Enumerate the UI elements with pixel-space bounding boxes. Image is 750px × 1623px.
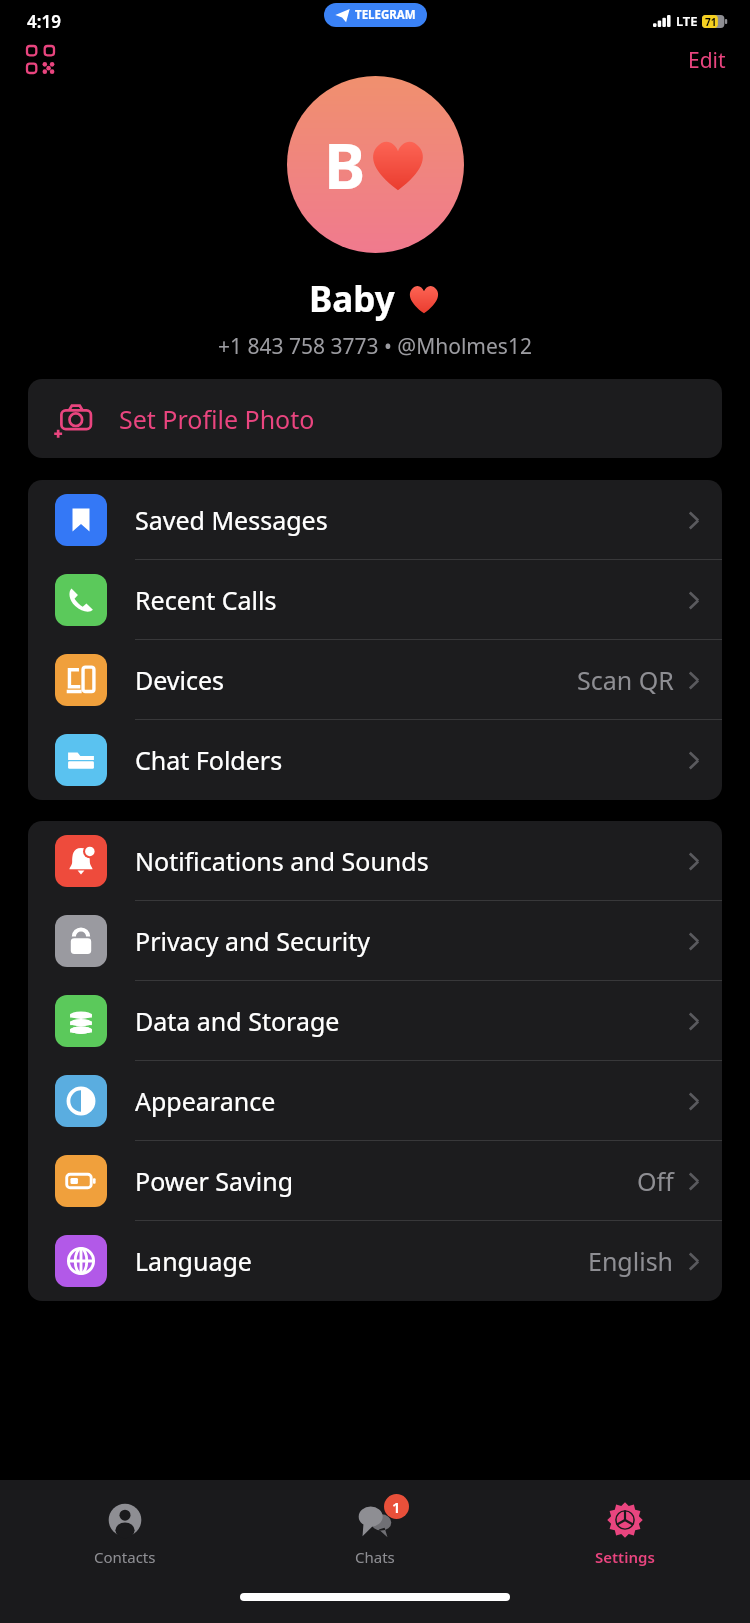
button[interactable]: Set Profile Photo <box>28 379 722 458</box>
button[interactable]: Saved Messages <box>28 480 722 560</box>
button[interactable]: 1 <box>250 1480 500 1583</box>
staticText: TELEGRAM <box>355 7 416 23</box>
button[interactable]: Profile photo <box>287 76 464 253</box>
staticText: LTE <box>676 12 698 30</box>
staticText: Recent Calls <box>135 583 688 617</box>
staticText: Saved Messages <box>135 503 688 537</box>
button[interactable]: Appearance <box>28 1061 722 1141</box>
button[interactable]: Language <box>28 1221 722 1301</box>
staticText: 4:19 <box>27 10 61 33</box>
staticText: Privacy and Security <box>135 924 688 958</box>
staticText: 1 <box>392 1497 401 1517</box>
staticText: Settings <box>595 1547 655 1567</box>
staticText: Off <box>637 1164 674 1198</box>
button[interactable]: Power Saving <box>28 1141 722 1221</box>
staticText: 71 <box>705 15 717 28</box>
staticText: Chat Folders <box>135 743 688 777</box>
staticText: Baby <box>309 275 395 323</box>
staticText: Appearance <box>135 1084 688 1118</box>
button[interactable]: Privacy and Security <box>28 901 722 981</box>
staticText: B <box>324 123 366 207</box>
button[interactable]: Settings <box>500 1480 750 1583</box>
button[interactable]: QR code <box>20 42 60 76</box>
staticText: Contacts <box>94 1547 156 1567</box>
staticText: Chats <box>355 1547 395 1567</box>
button[interactable]: Chat Folders <box>28 720 722 800</box>
button[interactable]: Notifications and Sounds <box>28 821 722 901</box>
staticText: Set Profile Photo <box>119 402 315 436</box>
staticText: +1 843 758 3773 • @Mholmes12 <box>218 332 532 361</box>
staticText: Data and Storage <box>135 1004 688 1038</box>
staticText: Scan QR <box>577 663 674 697</box>
staticText: Edit <box>688 46 726 72</box>
staticText: English <box>588 1244 674 1278</box>
button[interactable]: Edit <box>682 42 732 76</box>
staticText: Power Saving <box>135 1164 637 1198</box>
staticText: Devices <box>135 663 577 697</box>
staticText: Language <box>135 1244 588 1278</box>
button[interactable]: Data and Storage <box>28 981 722 1061</box>
button[interactable]: Contacts <box>0 1480 250 1583</box>
button[interactable]: Devices <box>28 640 722 720</box>
staticText: Notifications and Sounds <box>135 844 688 878</box>
button[interactable]: Recent Calls <box>28 560 722 640</box>
